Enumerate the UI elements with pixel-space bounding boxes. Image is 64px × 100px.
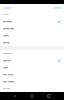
- button[interactable]: Relevance: [0, 18, 64, 25]
- button[interactable]: Home: [30, 94, 34, 98]
- staticText: Done: [54, 6, 61, 9]
- button[interactable]: Cancel: [0, 4, 13, 11]
- staticText: Relevance: [3, 20, 12, 23]
- staticText: Sort by: [3, 13, 9, 16]
- staticText: This Month: [3, 80, 14, 83]
- staticText: This Week: [3, 73, 13, 76]
- button[interactable]: Done: [52, 4, 64, 11]
- staticText: Upload Date: [3, 27, 14, 30]
- button[interactable]: Views: [0, 32, 64, 39]
- staticText: Cancel: [3, 6, 11, 9]
- button[interactable]: Today: [0, 64, 64, 71]
- button[interactable]: Rating: [0, 39, 64, 46]
- staticText: Upload date: [3, 52, 12, 55]
- staticText: Views: [3, 34, 9, 37]
- staticText: Duration: [3, 87, 10, 90]
- button[interactable]: This Week: [0, 71, 64, 78]
- button[interactable]: Upload Date: [0, 25, 64, 32]
- button[interactable]: Anytime: [0, 57, 64, 64]
- staticText: Rating: [3, 41, 9, 44]
- button[interactable]: Back: [13, 94, 17, 98]
- button[interactable]: Recent apps: [47, 94, 51, 98]
- staticText: Today: [3, 66, 8, 69]
- staticText: Anytime: [3, 59, 11, 62]
- button[interactable]: This Month: [0, 78, 64, 85]
